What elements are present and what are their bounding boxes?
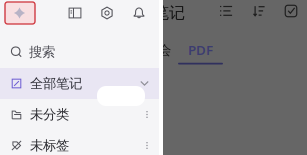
button[interactable]: Settings — [97, 2, 117, 24]
button[interactable]: AI assistant — [5, 2, 35, 24]
staticText: PDF — [188, 41, 213, 59]
button[interactable]: 未标签 — [0, 130, 159, 155]
button[interactable]: Toggle sidebar — [65, 2, 85, 24]
staticText: 未分类 — [30, 106, 69, 123]
button[interactable]: Notifications — [129, 2, 149, 24]
button[interactable]: Select notes — [280, 1, 302, 21]
staticText: 搜索 — [29, 44, 55, 60]
button[interactable]: 搜索 — [0, 38, 159, 66]
staticText: 会 — [158, 42, 171, 58]
staticText: 未标签 — [30, 137, 69, 154]
button[interactable]: 全部笔记 — [0, 68, 159, 99]
button[interactable]: Sort order — [248, 1, 270, 21]
staticText: 全部笔记 — [30, 75, 82, 92]
button[interactable]: 未分类 — [0, 99, 159, 130]
button[interactable]: View options — [215, 1, 237, 21]
staticText: 笔记 — [153, 3, 185, 23]
